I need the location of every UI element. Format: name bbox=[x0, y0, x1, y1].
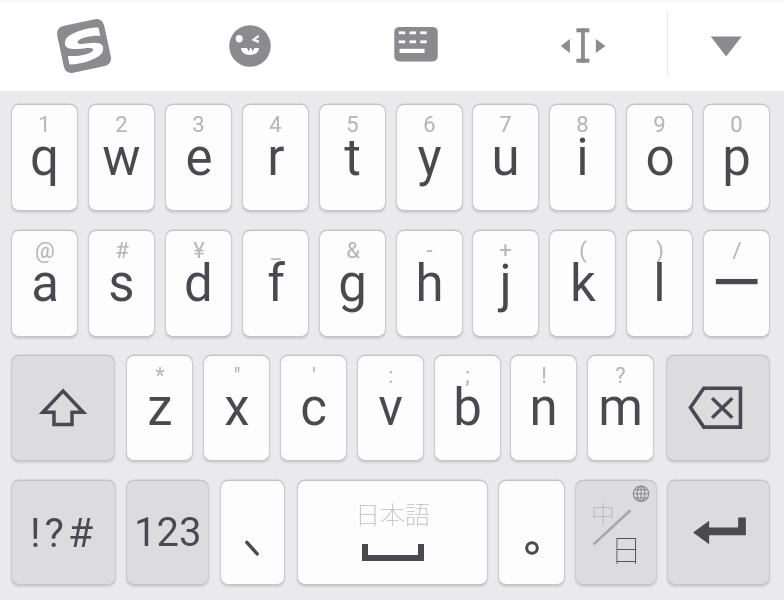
button[interactable]: Hide keyboard bbox=[668, 0, 784, 91]
staticText: ( bbox=[579, 238, 587, 264]
staticText: k bbox=[570, 254, 596, 314]
button[interactable]: * bbox=[127, 356, 192, 460]
button[interactable]: ¥ bbox=[166, 231, 231, 336]
button[interactable]: ? bbox=[588, 356, 653, 460]
staticText: / bbox=[732, 238, 742, 264]
staticText: " bbox=[233, 363, 241, 389]
staticText: a bbox=[31, 254, 59, 314]
button[interactable]: 4 bbox=[243, 105, 308, 210]
button[interactable]: 123 bbox=[127, 481, 208, 584]
button[interactable]: & bbox=[320, 231, 385, 336]
staticText: q bbox=[30, 128, 59, 188]
staticText: ' bbox=[312, 363, 316, 389]
button[interactable]: @ bbox=[12, 231, 77, 336]
staticText: x bbox=[224, 378, 250, 438]
button[interactable]: Sogou input bbox=[0, 0, 167, 91]
staticText: 4 bbox=[269, 112, 282, 138]
staticText: j bbox=[499, 254, 512, 314]
button[interactable]: : bbox=[358, 356, 423, 460]
button[interactable]: - bbox=[397, 231, 462, 336]
staticText: 日本語 bbox=[355, 495, 431, 531]
button[interactable]: 7 bbox=[473, 105, 538, 210]
staticText: o bbox=[645, 128, 675, 188]
staticText: + bbox=[499, 238, 512, 264]
button[interactable]: Keyboard layouts bbox=[333, 0, 499, 91]
button[interactable]: Comma bbox=[221, 481, 284, 584]
staticText: 8 bbox=[576, 112, 589, 138]
staticText: : bbox=[388, 363, 394, 389]
staticText: n bbox=[529, 378, 558, 438]
button[interactable]: + bbox=[473, 231, 538, 336]
button[interactable]: # bbox=[89, 231, 154, 336]
staticText: * bbox=[155, 363, 165, 389]
staticText: @ bbox=[35, 238, 55, 264]
button[interactable]: ) bbox=[627, 231, 692, 336]
button[interactable]: / bbox=[704, 231, 769, 336]
button[interactable]: Emoji bbox=[167, 0, 333, 91]
staticText: y bbox=[417, 128, 442, 188]
staticText: 3 bbox=[192, 112, 205, 138]
button[interactable]: Backspace bbox=[667, 356, 769, 460]
staticText: ! bbox=[541, 363, 547, 389]
button[interactable]: ! bbox=[511, 356, 576, 460]
button[interactable]: 2 bbox=[89, 105, 154, 210]
button[interactable]: 6 bbox=[397, 105, 462, 210]
button[interactable]: Move cursor bbox=[499, 0, 666, 91]
button[interactable]: 0 bbox=[704, 105, 769, 210]
staticText: - bbox=[426, 238, 433, 264]
button[interactable]: ' bbox=[281, 356, 346, 460]
staticText: ー bbox=[711, 252, 762, 316]
staticText: t bbox=[344, 128, 361, 188]
staticText: 6 bbox=[423, 112, 436, 138]
staticText: 0 bbox=[730, 112, 743, 138]
staticText: ¥ bbox=[193, 238, 205, 264]
staticText: r bbox=[267, 128, 285, 188]
button[interactable]: ; bbox=[435, 356, 500, 460]
button[interactable]: 8 bbox=[550, 105, 615, 210]
staticText: l bbox=[653, 254, 666, 314]
staticText: f bbox=[267, 254, 285, 314]
button[interactable]: Space bbox=[298, 481, 487, 584]
button[interactable]: Enter bbox=[668, 481, 769, 584]
staticText: w bbox=[102, 128, 141, 188]
button[interactable]: 5 bbox=[320, 105, 385, 210]
staticText: # bbox=[115, 238, 129, 264]
staticText: _ bbox=[271, 238, 281, 264]
staticText: b bbox=[453, 378, 482, 438]
staticText: m bbox=[598, 378, 643, 438]
staticText: 中 bbox=[591, 495, 615, 530]
staticText: ; bbox=[465, 363, 470, 389]
button[interactable]: Switch input language bbox=[576, 481, 656, 584]
staticText: 2 bbox=[115, 112, 128, 138]
staticText: p bbox=[722, 128, 751, 188]
staticText: i bbox=[576, 128, 589, 188]
button[interactable]: ( bbox=[550, 231, 615, 336]
staticText: u bbox=[491, 128, 520, 188]
staticText: !?# bbox=[30, 509, 98, 557]
staticText: 日 bbox=[610, 525, 643, 571]
button[interactable]: 9 bbox=[627, 105, 692, 210]
button[interactable]: " bbox=[204, 356, 269, 460]
staticText: 123 bbox=[134, 509, 202, 556]
button[interactable]: 3 bbox=[166, 105, 231, 210]
staticText: v bbox=[378, 378, 403, 438]
staticText: h bbox=[415, 254, 444, 314]
staticText: d bbox=[184, 254, 213, 314]
staticText: e bbox=[185, 128, 213, 188]
button[interactable]: _ bbox=[243, 231, 308, 336]
staticText: z bbox=[147, 378, 173, 438]
staticText: 9 bbox=[653, 112, 666, 138]
staticText: 1 bbox=[38, 112, 51, 138]
button[interactable]: 1 bbox=[12, 105, 77, 210]
staticText: ? bbox=[615, 363, 626, 389]
staticText: g bbox=[338, 254, 367, 314]
staticText: s bbox=[108, 254, 135, 314]
staticText: & bbox=[346, 238, 360, 264]
button[interactable]: !?# bbox=[12, 481, 115, 584]
staticText: 5 bbox=[346, 112, 359, 138]
staticText: c bbox=[300, 378, 327, 438]
staticText: ) bbox=[656, 238, 664, 264]
button[interactable]: Shift bbox=[12, 356, 114, 460]
staticText: 7 bbox=[499, 112, 512, 138]
button[interactable]: Period bbox=[499, 481, 564, 584]
